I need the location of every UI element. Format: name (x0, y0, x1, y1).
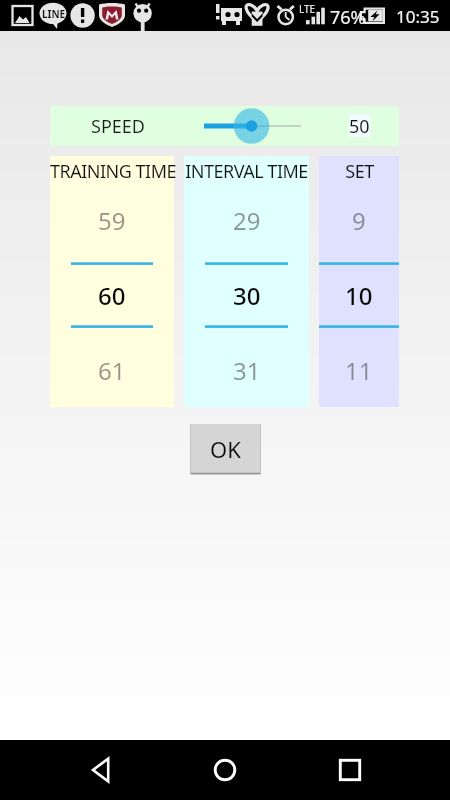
button[interactable]: 61 (50, 354, 174, 386)
staticText: LTE (299, 2, 316, 16)
button[interactable]: 59 (50, 204, 174, 236)
staticText: 11 (345, 354, 373, 386)
staticText: 9 (352, 204, 366, 236)
staticText: 61 (98, 354, 126, 386)
staticText: 30 (233, 279, 261, 311)
staticText: SPEED (91, 114, 145, 139)
staticText: 10:35 (396, 5, 440, 28)
button[interactable]: 10 (319, 279, 399, 311)
button[interactable]: 11 (319, 354, 399, 386)
button[interactable]: 29 (184, 204, 309, 236)
staticText: 59 (98, 204, 126, 236)
button[interactable]: Speed slider (204, 106, 301, 146)
staticText: 29 (233, 204, 261, 236)
staticText: 60 (98, 279, 126, 311)
staticText: 10 (345, 279, 373, 311)
button[interactable]: Home (187, 740, 263, 800)
staticText: LINE (42, 7, 66, 21)
button[interactable]: 31 (184, 354, 309, 386)
staticText: 31 (233, 354, 261, 386)
staticText: INTERVAL TIME (185, 159, 308, 184)
button[interactable]: Recents (312, 740, 388, 800)
button[interactable]: 60 (50, 279, 174, 311)
staticText: 76% (330, 5, 366, 30)
staticText: TRAINING TIME (50, 159, 174, 184)
staticText: OK (210, 434, 241, 464)
button[interactable]: Back (62, 740, 138, 800)
button[interactable]: 30 (184, 279, 309, 311)
button[interactable]: OK (190, 424, 261, 475)
staticText: 50 (349, 114, 370, 137)
staticText: SET (345, 159, 374, 184)
button[interactable]: 9 (319, 204, 399, 236)
